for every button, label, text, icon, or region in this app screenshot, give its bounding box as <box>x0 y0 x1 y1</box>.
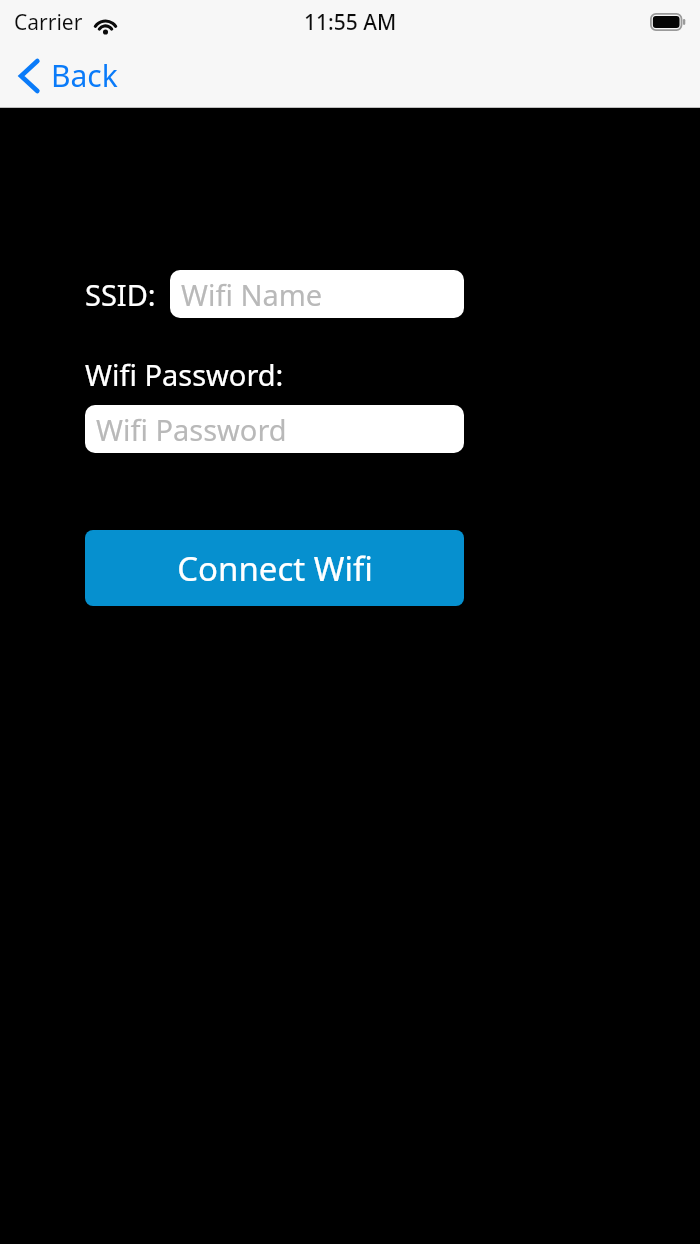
button[interactable]: Wifi Password <box>85 405 464 453</box>
other: Back <box>18 59 40 93</box>
staticText: Wifi Password: <box>85 355 284 394</box>
other: Wi-Fi signal <box>92 12 119 33</box>
staticText: 11:55 AM <box>304 8 397 37</box>
staticText: Wifi Name <box>181 275 323 314</box>
staticText: Connect Wifi <box>177 546 373 591</box>
staticText: Wifi Password <box>96 410 287 449</box>
button[interactable]: Wifi Name <box>170 270 464 318</box>
button[interactable]: Connect Wifi <box>85 530 464 606</box>
other: Battery full <box>650 13 686 31</box>
staticText: SSID: <box>85 275 156 314</box>
staticText: Back <box>51 55 118 96</box>
staticText: Carrier <box>14 8 83 37</box>
button[interactable]: Back <box>0 44 134 107</box>
